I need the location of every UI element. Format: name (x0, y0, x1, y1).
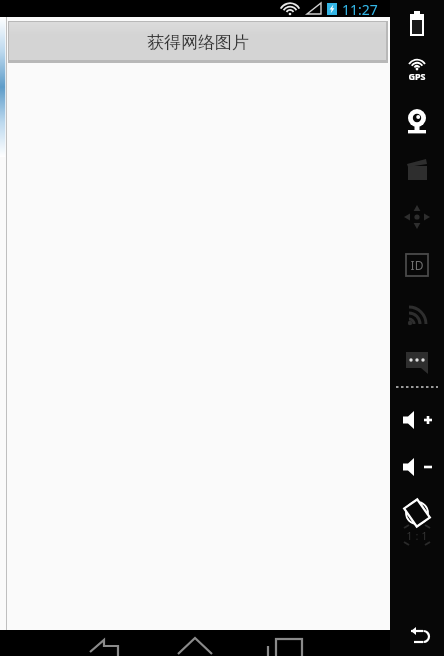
button[interactable]: Home (170, 630, 220, 656)
button[interactable]: Camera (390, 106, 444, 136)
button[interactable]: Volume up (390, 408, 444, 438)
staticText: 1 : 1 (390, 528, 444, 543)
button[interactable]: SMS (390, 348, 444, 378)
button[interactable]: Rotate (390, 500, 444, 530)
button[interactable]: Return (390, 618, 444, 648)
button[interactable]: Recent apps (262, 630, 312, 656)
staticText: 获得网络图片 (147, 32, 249, 53)
staticText: ID (390, 257, 444, 273)
button[interactable]: Network (390, 300, 444, 330)
button[interactable]: D-pad (390, 204, 444, 234)
button[interactable]: Volume down (390, 455, 444, 485)
staticText: GPS (390, 70, 444, 82)
button[interactable]: Battery (390, 10, 444, 40)
button[interactable]: Record video (390, 156, 444, 186)
staticText: 11:27 (342, 0, 378, 17)
button[interactable]: Device ID (390, 252, 444, 282)
button[interactable]: 获得网络图片 (8, 21, 388, 63)
button[interactable]: Back (78, 630, 128, 656)
button[interactable]: GPS (390, 58, 444, 88)
